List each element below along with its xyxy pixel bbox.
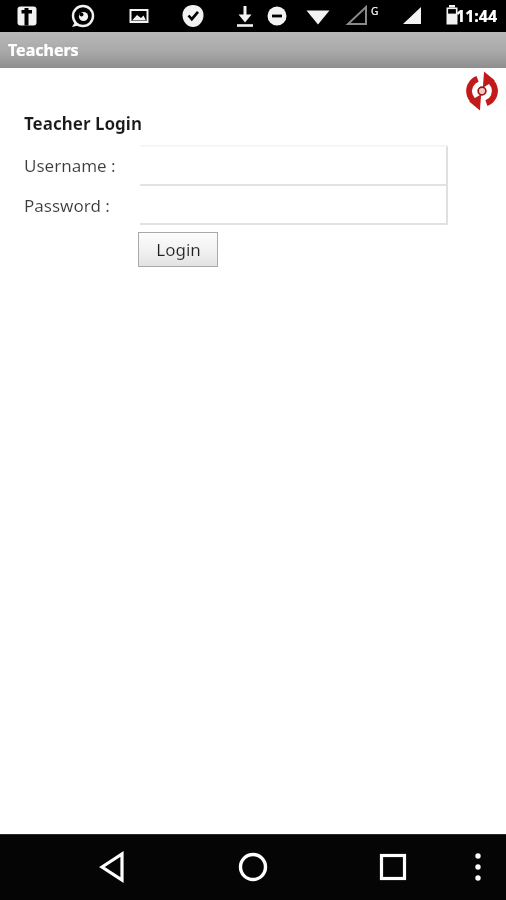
staticText: 11:44 bbox=[456, 5, 498, 27]
staticText: Password : bbox=[24, 194, 110, 217]
button[interactable]: More options bbox=[452, 841, 504, 893]
staticText: Login bbox=[156, 238, 201, 261]
staticText: Username : bbox=[24, 154, 116, 177]
button[interactable] bbox=[140, 186, 448, 225]
staticText: G bbox=[371, 4, 379, 18]
button[interactable]: Recent apps bbox=[363, 837, 423, 897]
button[interactable]: Home bbox=[223, 837, 283, 897]
button[interactable]: Login bbox=[138, 232, 218, 267]
button[interactable]: Back bbox=[83, 837, 143, 897]
button[interactable] bbox=[140, 145, 448, 186]
staticText: Teachers bbox=[8, 39, 79, 61]
button[interactable]: Refresh bbox=[463, 72, 501, 110]
staticText: Teacher Login bbox=[24, 112, 142, 135]
